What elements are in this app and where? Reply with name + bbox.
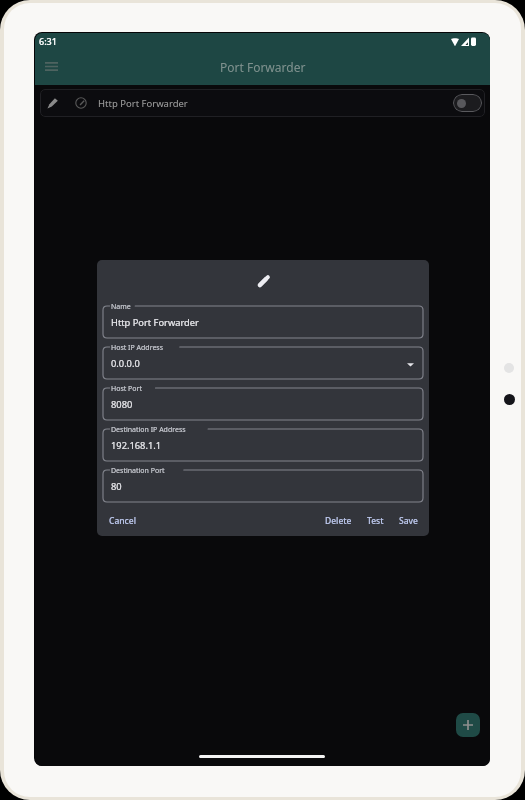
staticText: Port Forwarder (220, 59, 306, 75)
staticText: 0.0.0.0 (111, 357, 140, 370)
staticText: 80 (111, 480, 122, 493)
staticText: Delete (325, 515, 352, 527)
button[interactable]: Test (367, 515, 384, 527)
button[interactable]: Add (456, 713, 480, 737)
staticText: Host Port (111, 384, 143, 394)
staticText: Cancel (109, 515, 136, 527)
staticText: Destination Port (111, 466, 165, 476)
staticText: 8080 (111, 398, 133, 411)
staticText: 192.168.1.1 (111, 439, 162, 452)
button[interactable]: Http Port Forwarder (40, 89, 485, 117)
button[interactable]: Enable port forwarder (453, 94, 482, 112)
staticText: Save (399, 515, 418, 527)
staticText: Host IP Address (111, 343, 164, 353)
staticText: Destination IP Address (111, 425, 186, 435)
button[interactable]: Cancel (109, 515, 136, 527)
staticText: Http Port Forwarder (111, 316, 199, 329)
staticText: Test (367, 515, 384, 527)
button[interactable]: Save (399, 515, 418, 527)
staticText: Name (111, 302, 131, 312)
button[interactable]: Menu (39, 54, 63, 78)
staticText: 6:31 (39, 35, 57, 47)
button[interactable]: Delete (325, 515, 352, 527)
staticText: Http Port Forwarder (98, 97, 188, 110)
